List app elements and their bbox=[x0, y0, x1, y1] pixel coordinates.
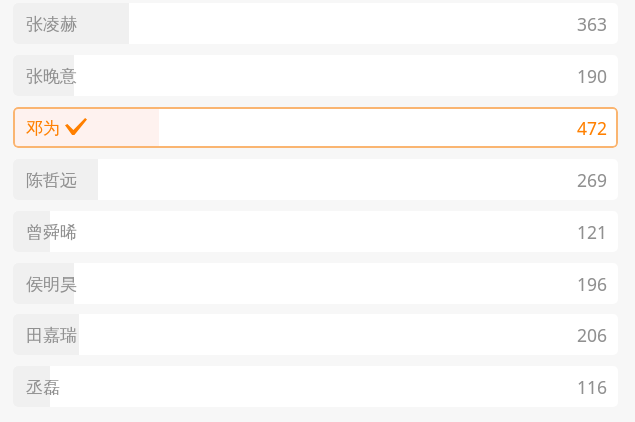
button[interactable]: 陈哲远 bbox=[13, 159, 618, 200]
staticText: 张凌赫 bbox=[26, 14, 77, 35]
button[interactable]: 邓为 bbox=[13, 107, 618, 148]
staticText: 121 bbox=[577, 220, 608, 244]
staticText: 张晚意 bbox=[26, 66, 77, 87]
button[interactable]: 田嘉瑞 bbox=[13, 314, 618, 355]
staticText: 116 bbox=[577, 375, 608, 399]
button[interactable]: 张晚意 bbox=[13, 55, 618, 96]
staticText: 曾舜晞 bbox=[26, 222, 77, 243]
other: Your vote bbox=[65, 118, 87, 135]
button[interactable]: 曾舜晞 bbox=[13, 211, 618, 252]
button[interactable]: 侯明昊 bbox=[13, 263, 618, 304]
staticText: 邓为 bbox=[26, 118, 60, 139]
staticText: 269 bbox=[577, 168, 608, 192]
staticText: 206 bbox=[577, 323, 608, 347]
staticText: 472 bbox=[577, 116, 608, 140]
staticText: 190 bbox=[577, 64, 608, 88]
button[interactable]: 张凌赫 bbox=[13, 3, 618, 44]
staticText: 丞磊 bbox=[26, 377, 60, 398]
staticText: 田嘉瑞 bbox=[26, 325, 77, 346]
staticText: 363 bbox=[577, 12, 608, 36]
staticText: 196 bbox=[577, 272, 608, 296]
button[interactable]: 丞磊 bbox=[13, 366, 618, 407]
staticText: 侯明昊 bbox=[26, 274, 77, 295]
staticText: 陈哲远 bbox=[26, 170, 77, 191]
